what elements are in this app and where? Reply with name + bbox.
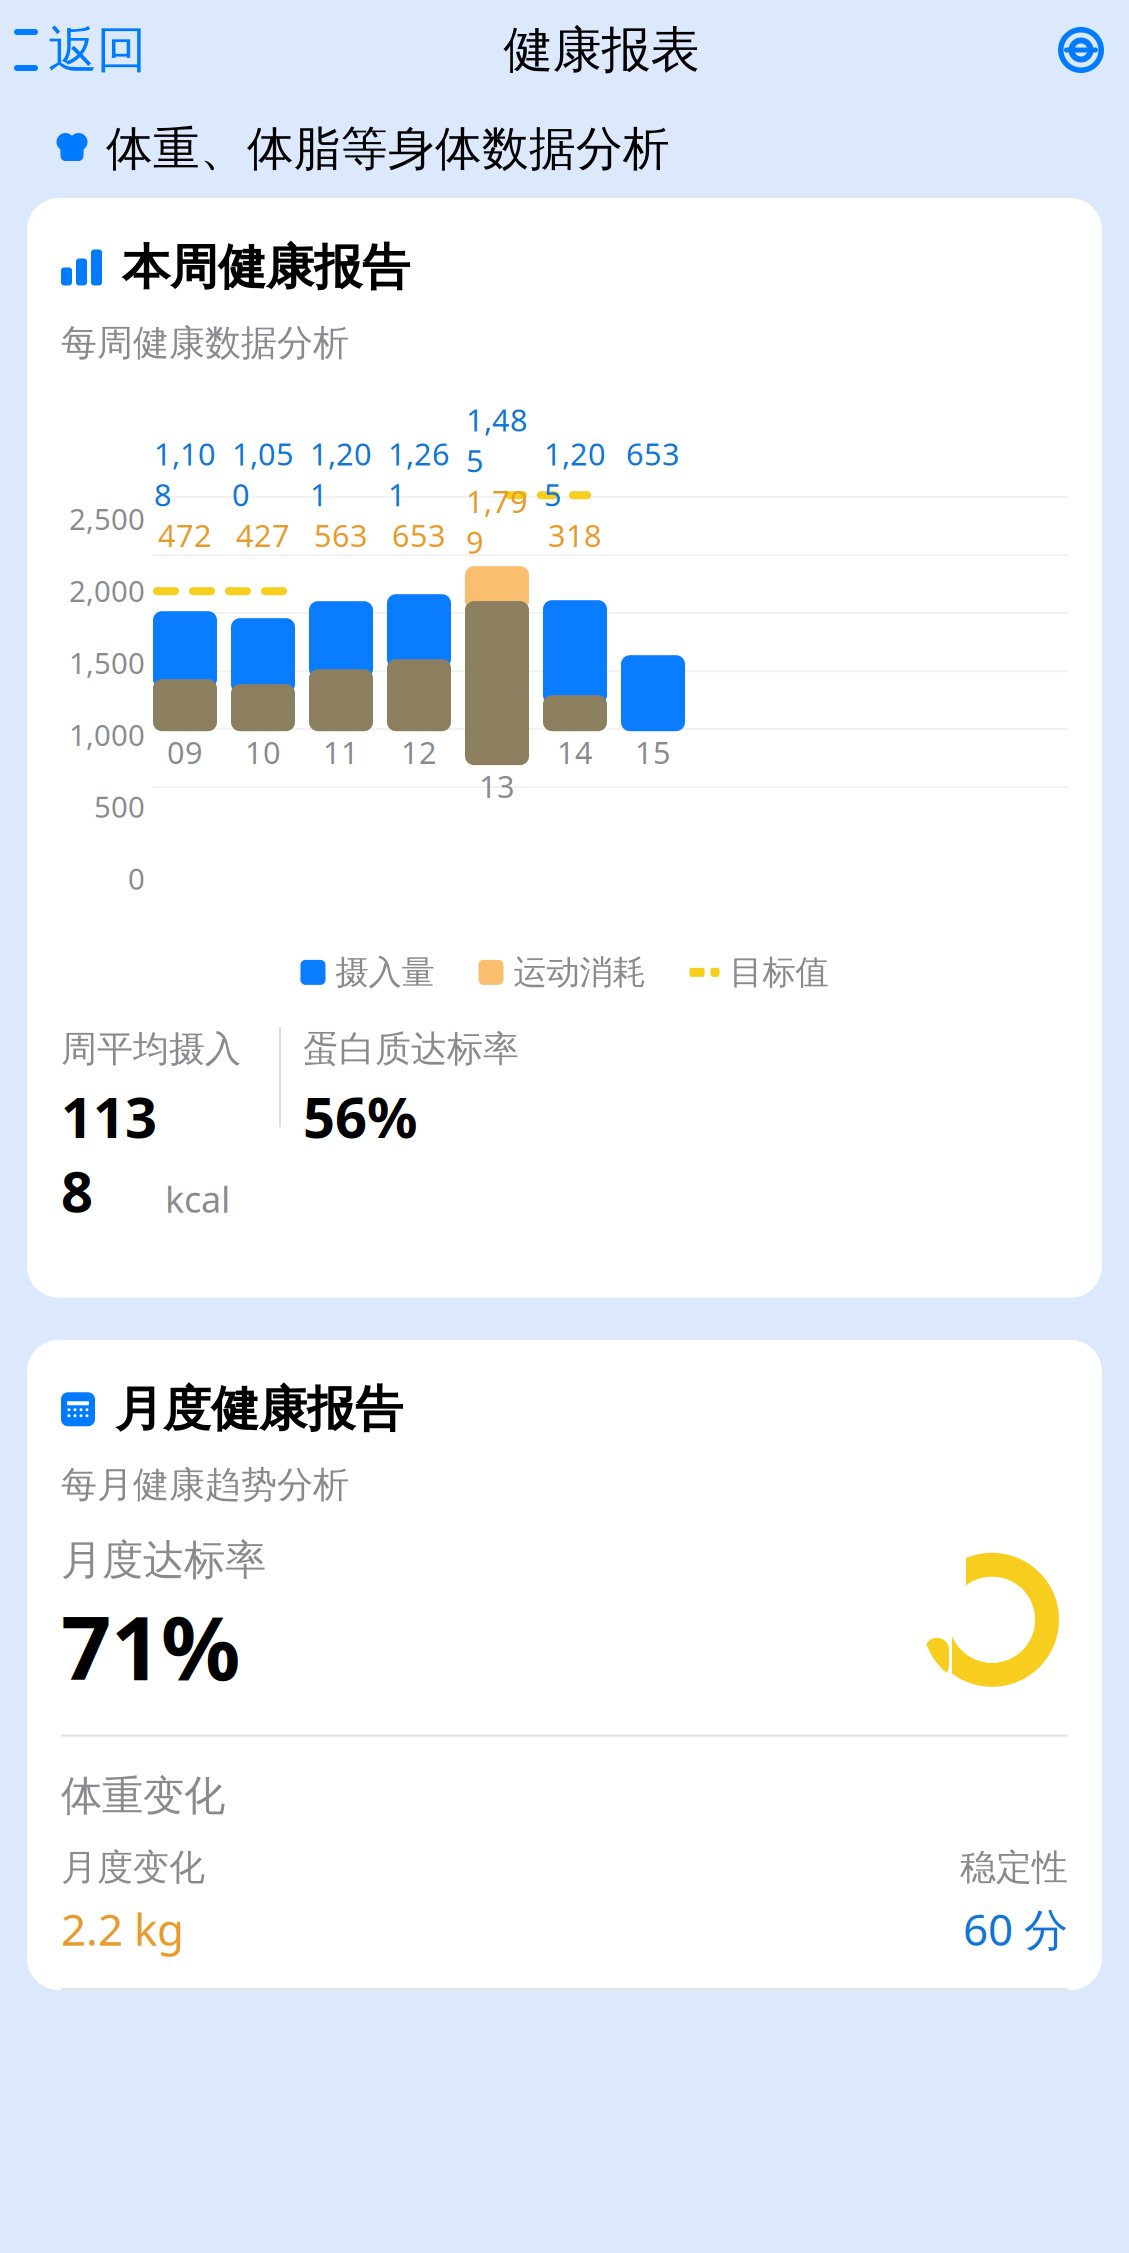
staticText: 15 xyxy=(635,732,671,772)
staticText: 1,000 xyxy=(69,715,145,754)
staticText: 56% xyxy=(303,1079,418,1153)
staticText: 月度变化 xyxy=(61,1845,205,1890)
staticText: 500 xyxy=(94,787,145,826)
staticText: 1,108 xyxy=(154,433,216,515)
staticText: 每月健康趋势分析 xyxy=(61,1463,349,1507)
staticText: 本周健康报告 xyxy=(122,238,410,297)
staticText: 472 xyxy=(158,515,212,555)
staticText: 运动消耗 xyxy=(513,952,645,993)
staticText: 1,485 xyxy=(466,399,528,481)
staticText: 稳定性 xyxy=(960,1845,1068,1890)
staticText: 653 xyxy=(626,433,680,474)
staticText: 1,500 xyxy=(69,643,145,682)
staticText: 周平均摄入 xyxy=(61,1027,241,1071)
staticText: 1,050 xyxy=(232,433,294,515)
staticText: 1,261 xyxy=(388,433,450,515)
staticText: 14 xyxy=(557,732,593,772)
staticText: 0 xyxy=(128,859,145,898)
staticText: 蛋白质达标率 xyxy=(303,1027,519,1071)
staticText: 月度健康报告 xyxy=(115,1380,403,1439)
staticText: 653 xyxy=(392,515,446,555)
staticText: 体重变化 xyxy=(61,1771,225,1821)
button[interactable]: 设置 xyxy=(1057,16,1129,84)
button[interactable]: 返回 xyxy=(0,10,146,90)
staticText: 60 分 xyxy=(963,1900,1068,1958)
staticText: 2.2 kg xyxy=(61,1900,184,1958)
staticText: 11 xyxy=(323,732,359,772)
staticText: 2,500 xyxy=(69,499,145,538)
staticText: 1138 xyxy=(61,1079,157,1228)
staticText: 每周健康数据分析 xyxy=(61,321,349,365)
staticText: 427 xyxy=(236,515,290,555)
staticText: 1,201 xyxy=(310,433,372,515)
staticText: 2,000 xyxy=(69,571,145,610)
staticText: 12 xyxy=(401,732,437,772)
staticText: 摄入量 xyxy=(335,952,434,993)
staticText: 目标值 xyxy=(729,952,828,993)
staticText: 体重、体脂等身体数据分析 xyxy=(106,120,670,178)
staticText: 71% xyxy=(61,1588,240,1705)
staticText: 1,799 xyxy=(466,481,528,562)
staticText: 健康报表 xyxy=(503,20,699,80)
staticText: 09 xyxy=(167,732,203,772)
staticText: 1,205 xyxy=(544,433,606,515)
staticText: 10 xyxy=(245,732,281,772)
staticText: 13 xyxy=(479,766,515,806)
staticText: 月度达标率 xyxy=(61,1535,266,1586)
staticText: kcal xyxy=(165,1175,230,1223)
staticText: 563 xyxy=(314,515,368,555)
staticText: 返回 xyxy=(48,20,146,80)
staticText: 318 xyxy=(548,515,602,555)
